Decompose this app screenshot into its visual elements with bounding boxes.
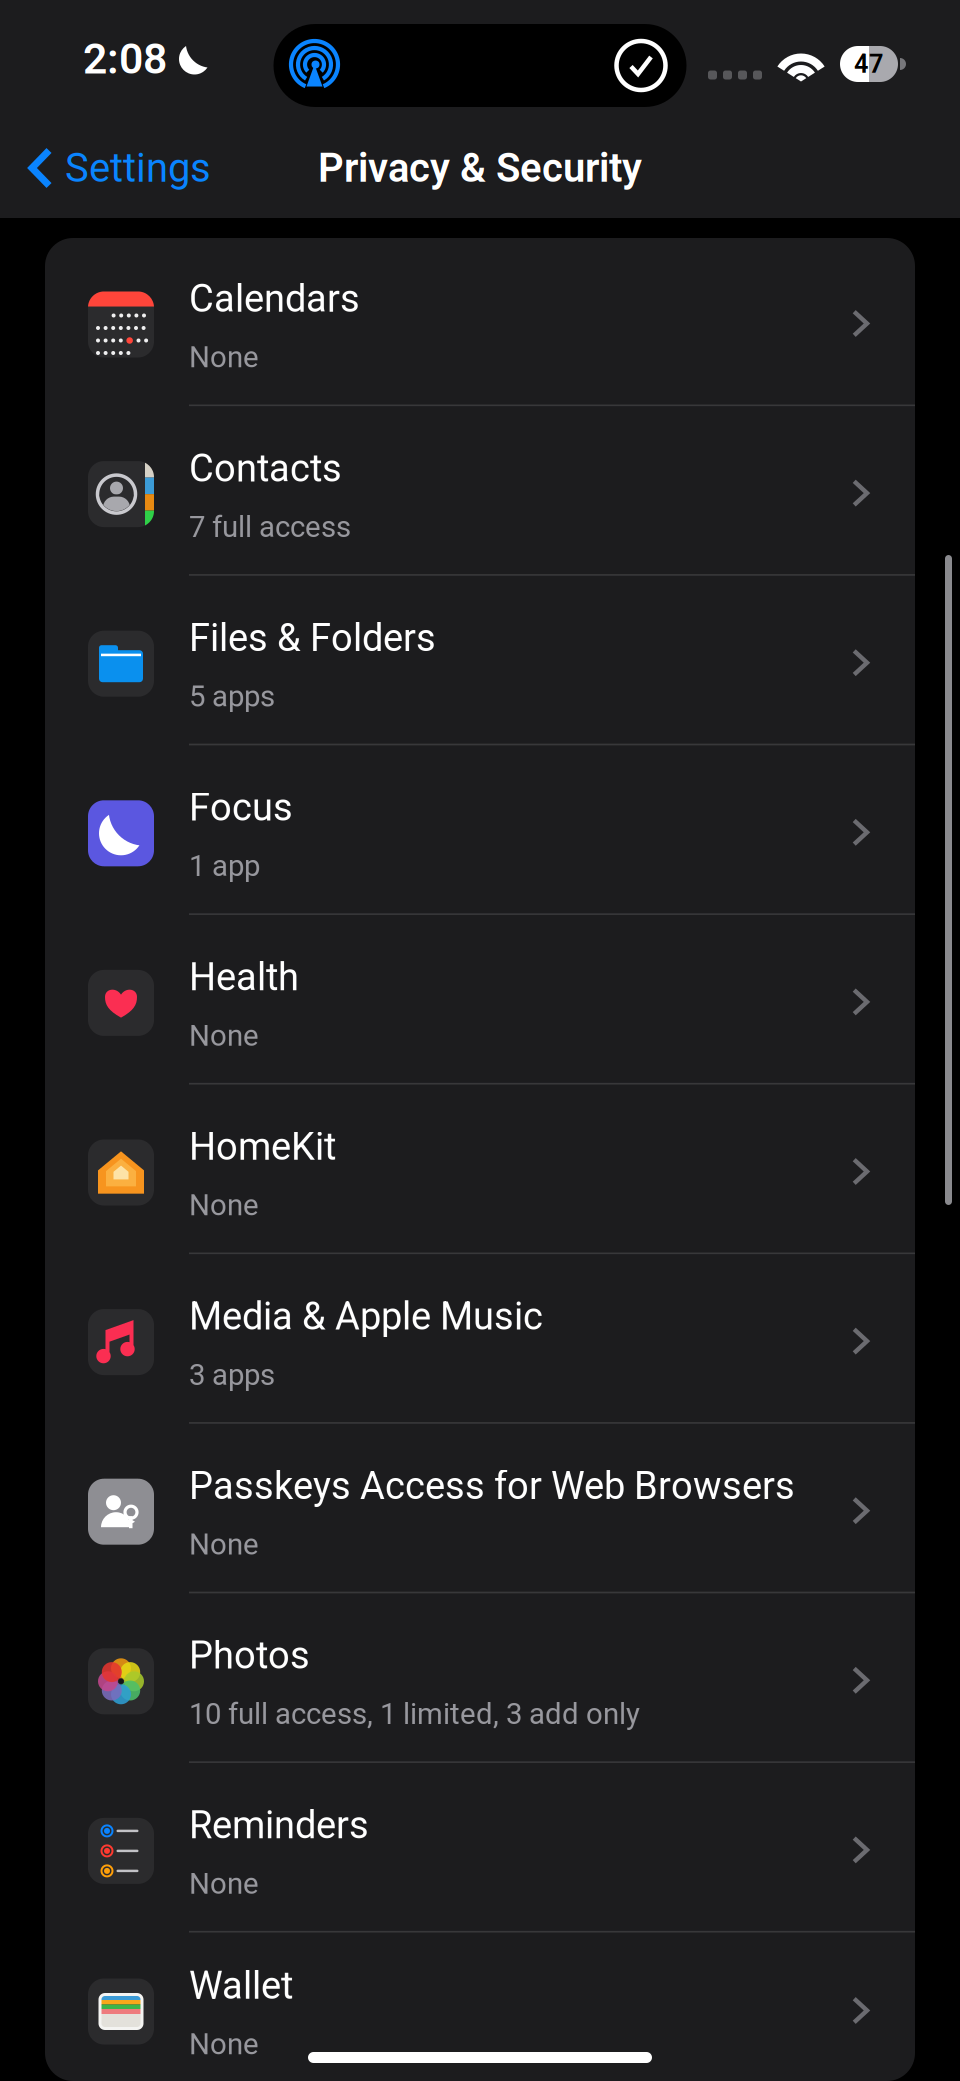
staticText: 2:08 [83,34,167,84]
staticText: 5 apps [189,679,275,714]
button[interactable]: Contacts [45,406,915,576]
staticText: None [189,1527,259,1562]
staticText: Health [189,955,299,999]
staticText: Focus [189,785,293,830]
staticText: Reminders [189,1803,369,1847]
staticText: Calendars [189,276,360,321]
staticText: Contacts [189,446,342,491]
button[interactable]: Settings [0,135,211,201]
button[interactable]: Focus [45,745,915,915]
button[interactable]: Files & Folders [45,576,915,745]
staticText: Passkeys Access for Web Browsers [189,1464,795,1508]
button[interactable]: Calendars [45,236,915,406]
staticText: Privacy & Security [318,145,642,191]
staticText: None [189,1018,259,1053]
staticText: 3 apps [189,1358,275,1392]
staticText: HomeKit [189,1124,336,1169]
button[interactable]: Passkeys Access for Web Browsers [45,1424,915,1593]
staticText: 10 full access, 1 limited, 3 add only [189,1697,640,1731]
staticText: None [189,1866,259,1901]
staticText: Photos [189,1633,310,1678]
staticText: 1 app [189,849,260,883]
staticText: Media & Apple Music [189,1294,543,1339]
staticText: Settings [65,145,211,191]
button[interactable]: Health [45,915,915,1084]
button[interactable]: HomeKit [45,1084,915,1254]
button[interactable]: Wallet [45,1932,915,2081]
button[interactable]: Reminders [45,1763,915,1932]
button[interactable]: Photos [45,1593,915,1763]
button[interactable]: Media & Apple Music [45,1254,915,1424]
staticText: Files & Folders [189,616,436,660]
staticText: 47 [854,49,884,79]
staticText: 7 full access [189,510,351,544]
staticText: None [189,340,259,374]
staticText: Wallet [189,1963,293,2008]
staticText: None [189,2027,259,2061]
staticText: None [189,1188,259,1222]
